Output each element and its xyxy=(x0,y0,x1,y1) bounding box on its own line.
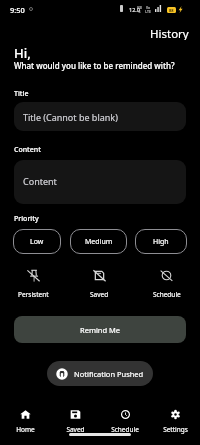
button[interactable]: Low xyxy=(13,229,61,254)
staticText: Content xyxy=(14,145,41,155)
staticText: KB S xyxy=(137,5,142,14)
staticText: Priority xyxy=(14,214,39,224)
button[interactable]: Content xyxy=(14,160,186,204)
staticText: Notification Pushed xyxy=(74,369,144,379)
button[interactable]: Saved xyxy=(50,408,100,436)
staticText: Remind Me xyxy=(80,325,121,335)
button[interactable]: Persistent xyxy=(0,267,66,301)
staticText: Settings xyxy=(163,425,188,434)
staticText: Schedule xyxy=(111,425,139,434)
button[interactable]: Saved xyxy=(66,267,133,301)
staticText: Saved xyxy=(90,290,109,299)
staticText: 9:50 xyxy=(10,5,25,15)
button[interactable]: Title (Cannot be blank) xyxy=(14,102,186,131)
staticText: 12.0 xyxy=(129,6,140,13)
staticText: Title xyxy=(14,89,29,99)
button[interactable]: Medium xyxy=(70,229,127,254)
button[interactable]: Schedule xyxy=(100,408,150,436)
staticText: Title (Cannot be blank) xyxy=(23,111,118,123)
staticText: Content xyxy=(23,175,57,187)
staticText: Hi, xyxy=(14,44,31,62)
staticText: High xyxy=(153,237,169,247)
button[interactable]: Notification Pushed xyxy=(47,361,153,386)
staticText: What would you like to be reminded with? xyxy=(14,60,175,71)
staticText: Vo LTE xyxy=(145,5,151,14)
staticText: History xyxy=(150,26,189,40)
staticText: Saved xyxy=(66,425,85,434)
button[interactable]: Home xyxy=(0,408,50,436)
staticText: Schedule xyxy=(153,290,181,299)
button[interactable]: Schedule xyxy=(133,267,200,301)
staticText: 88 xyxy=(169,8,174,13)
staticText: Low xyxy=(30,237,44,247)
staticText: Medium xyxy=(85,237,113,247)
staticText: Persistent xyxy=(18,290,49,299)
button[interactable]: Remind Me xyxy=(14,316,186,343)
staticText: Home xyxy=(16,425,35,434)
button[interactable]: High xyxy=(135,229,187,254)
button[interactable]: Settings xyxy=(150,408,200,436)
button[interactable]: History xyxy=(139,24,200,42)
